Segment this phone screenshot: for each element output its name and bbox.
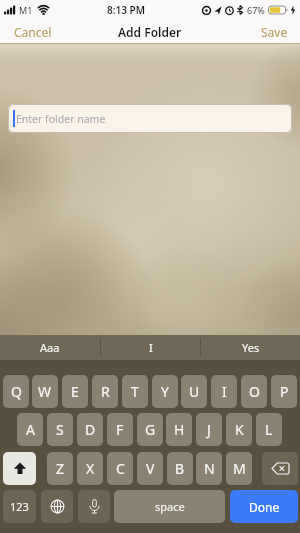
button[interactable]: J — [196, 413, 222, 446]
staticText: Add Folder — [118, 24, 182, 40]
button[interactable]: L — [256, 413, 282, 446]
staticText: T — [131, 382, 139, 401]
staticText: O — [249, 382, 260, 401]
staticText: K — [235, 420, 244, 439]
staticText: space — [155, 499, 185, 514]
button[interactable]: V — [137, 452, 163, 485]
staticText: S — [56, 420, 64, 439]
button[interactable]: R — [92, 375, 118, 408]
button[interactable]: S — [47, 413, 73, 446]
button[interactable]: space — [114, 490, 225, 523]
staticText: H — [174, 420, 185, 439]
staticText: A — [26, 420, 35, 439]
button[interactable]: Z — [47, 452, 73, 485]
button[interactable]: W — [32, 375, 58, 408]
staticText: B — [175, 459, 185, 478]
button[interactable]: Y — [152, 375, 178, 408]
staticText: G — [145, 420, 156, 439]
button[interactable]: 123 — [3, 490, 36, 523]
staticText: I — [149, 340, 153, 355]
staticText: W — [38, 382, 52, 401]
staticText: Done — [249, 499, 280, 515]
staticText: C — [116, 459, 125, 478]
button[interactable]: G — [137, 413, 163, 446]
staticText: M1 — [19, 4, 33, 16]
staticText: I — [222, 382, 227, 401]
button[interactable]: F — [107, 413, 133, 446]
button[interactable] — [41, 490, 73, 523]
staticText: Cancel — [14, 24, 52, 40]
staticText: N — [204, 459, 215, 478]
button[interactable]: T — [122, 375, 148, 408]
button[interactable]: I — [211, 375, 237, 408]
staticText: Enter folder name — [16, 112, 106, 126]
button[interactable]: N — [196, 452, 222, 485]
button[interactable]: B — [167, 452, 193, 485]
staticText: R — [101, 382, 110, 401]
staticText: J — [207, 420, 211, 439]
staticText: V — [146, 459, 155, 478]
button[interactable]: M — [226, 452, 252, 485]
button[interactable]: I — [101, 335, 200, 360]
staticText: Y — [161, 382, 169, 401]
button[interactable]: Save — [255, 22, 294, 42]
button[interactable]: O — [241, 375, 267, 408]
button[interactable]: Aaa — [0, 335, 100, 360]
button[interactable]: Yes — [201, 335, 300, 360]
button[interactable]: Q — [3, 375, 29, 408]
button[interactable] — [3, 452, 36, 485]
staticText: Aaa — [40, 340, 60, 355]
staticText: X — [86, 459, 95, 478]
staticText: F — [116, 420, 124, 439]
button[interactable]: D — [77, 413, 103, 446]
staticText: L — [265, 420, 273, 439]
staticText: 67% — [247, 4, 265, 16]
staticText: U — [189, 382, 200, 401]
button[interactable]: K — [226, 413, 252, 446]
staticText: 8:13 PM — [107, 3, 145, 17]
staticText: Z — [56, 459, 65, 478]
staticText: Save — [261, 24, 288, 40]
staticText: Q — [11, 382, 22, 401]
button[interactable]: H — [166, 413, 192, 446]
button[interactable]: E — [62, 375, 88, 408]
button[interactable] — [78, 490, 110, 523]
staticText: Yes — [242, 340, 260, 355]
staticText: 123 — [10, 499, 29, 514]
staticText: P — [280, 382, 289, 401]
button[interactable]: P — [271, 375, 297, 408]
button[interactable]: Cancel — [8, 22, 58, 42]
button[interactable] — [262, 452, 298, 485]
staticText: E — [71, 382, 79, 401]
staticText: M — [233, 459, 246, 478]
button[interactable]: C — [107, 452, 133, 485]
staticText: D — [85, 420, 96, 439]
button[interactable]: Done — [230, 490, 298, 523]
button[interactable]: A — [17, 413, 43, 446]
button[interactable]: X — [77, 452, 103, 485]
button[interactable]: Enter folder name — [8, 104, 292, 133]
button[interactable]: U — [181, 375, 207, 408]
